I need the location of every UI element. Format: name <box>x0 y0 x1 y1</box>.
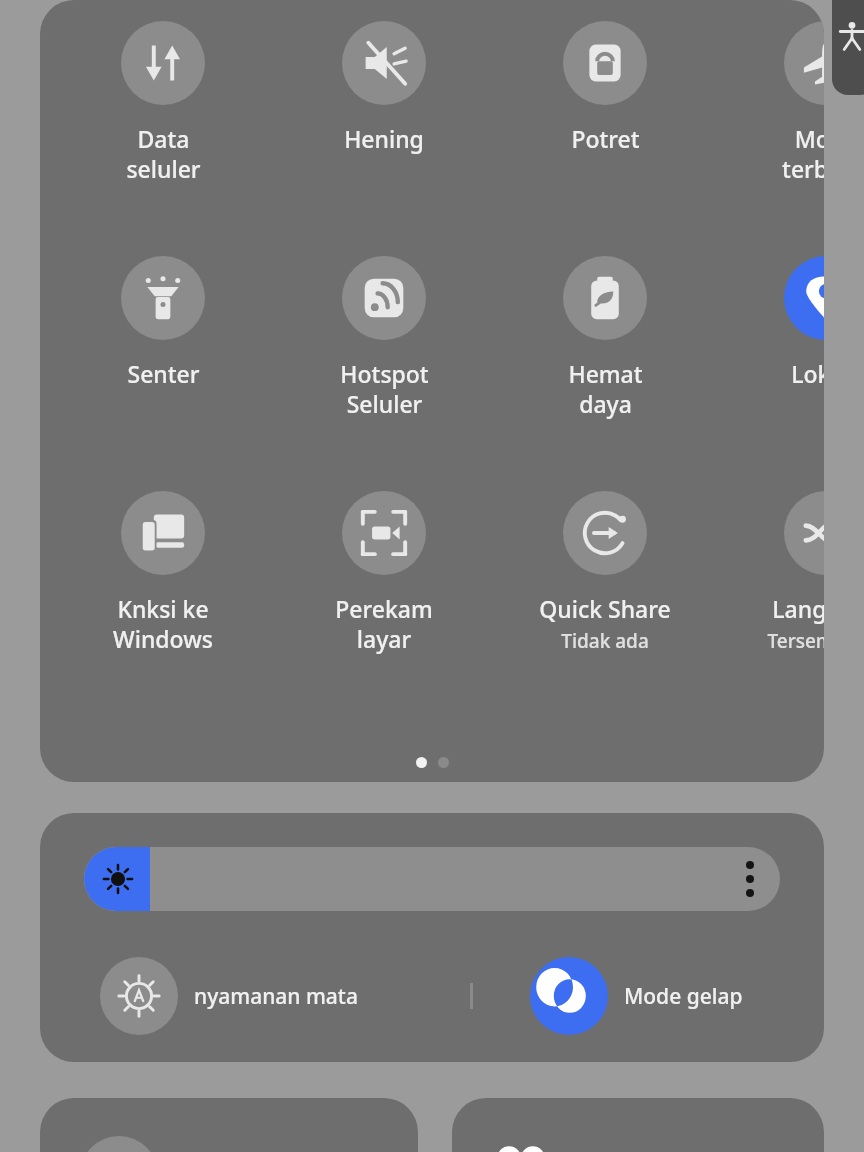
staticText: Quick Share <box>539 593 671 624</box>
button[interactable]: Hemat daya <box>485 256 725 420</box>
staticText: Mode terbang <box>782 123 824 185</box>
staticText: Lokasi <box>791 358 824 389</box>
staticText: nyamanan mata <box>194 982 358 1011</box>
staticText: Langsung <box>772 593 824 624</box>
staticText: Hening <box>344 123 424 154</box>
staticText: Perekam layar <box>335 593 433 655</box>
staticText: Tersembunyi <box>767 628 824 654</box>
button[interactable]: Lokasi <box>706 256 824 389</box>
staticText: Tidak ada <box>561 628 649 654</box>
staticText: Potret <box>571 123 640 154</box>
button[interactable]: Mode terbang <box>706 21 824 185</box>
staticText: Hemat daya <box>568 358 643 420</box>
staticText: Data seluler <box>126 123 201 185</box>
button[interactable]: Hotspot Seluler <box>264 256 504 420</box>
button[interactable]: Brightness <box>84 847 780 911</box>
button[interactable]: nyamanan mata <box>100 950 440 1042</box>
button[interactable]: Quick Share <box>485 491 725 654</box>
staticText: Mode gelap <box>624 982 743 1011</box>
button[interactable] <box>452 1098 824 1152</box>
staticText: Knksi ke Windows <box>113 593 213 655</box>
button[interactable]: Hening <box>264 21 504 154</box>
button[interactable]: Data seluler <box>43 21 283 185</box>
staticText: Senter <box>127 358 200 389</box>
button[interactable]: Perekam layar <box>264 491 504 655</box>
button[interactable]: Potret <box>485 21 725 154</box>
button[interactable]: Smart View <box>40 1098 418 1152</box>
button[interactable]: Knksi ke Windows <box>43 491 283 655</box>
button[interactable]: Senter <box>43 256 283 389</box>
button[interactable]: Mode gelap <box>530 950 810 1042</box>
button[interactable]: Langsung <box>706 491 824 654</box>
button[interactable]: Accessibility <box>832 0 864 95</box>
staticText: Hotspot Seluler <box>340 358 429 420</box>
